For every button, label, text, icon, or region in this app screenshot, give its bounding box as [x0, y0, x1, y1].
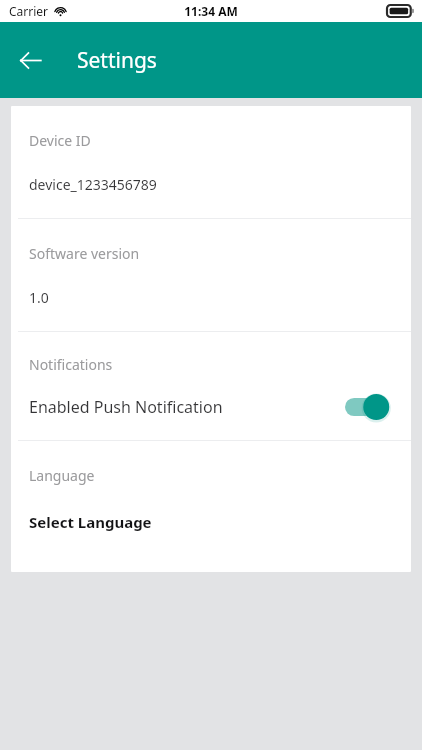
button[interactable]: Device ID [11, 106, 411, 218]
staticText: Carrier [9, 3, 49, 19]
staticText: Language [29, 466, 95, 485]
button[interactable]: Software version [11, 219, 411, 331]
staticText: 11:34 AM [184, 3, 238, 19]
button[interactable]: Language [11, 441, 411, 572]
staticText: Select Language [29, 512, 152, 532]
button[interactable]: Toggle push notifications [345, 394, 393, 420]
staticText: Enabled Push Notification [29, 396, 223, 418]
staticText: Device ID [29, 131, 91, 150]
button[interactable]: Back [6, 36, 54, 84]
staticText: Notifications [29, 355, 113, 374]
staticText: Software version [29, 244, 140, 263]
staticText: device_1233456789 [29, 175, 157, 194]
staticText: Settings [77, 46, 157, 75]
button[interactable]: Notifications [11, 332, 411, 440]
staticText: 1.0 [29, 288, 49, 307]
